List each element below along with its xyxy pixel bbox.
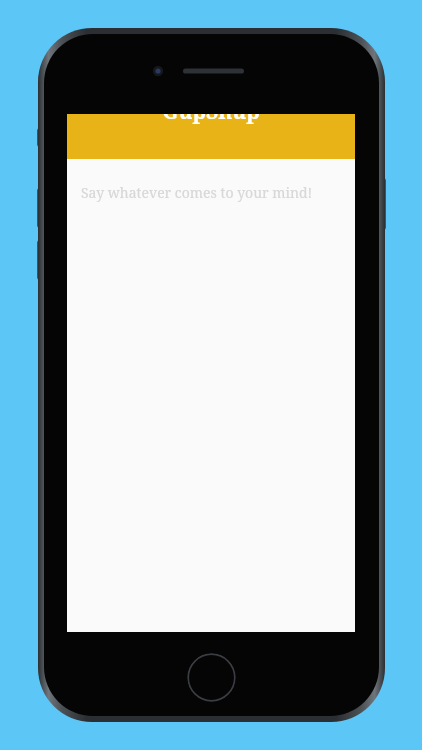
button[interactable]: Home (187, 653, 236, 702)
button[interactable]: GupShup (67, 114, 355, 159)
staticText: Say whatever comes to your mind! (81, 183, 313, 202)
staticText: GupShup (162, 97, 260, 126)
